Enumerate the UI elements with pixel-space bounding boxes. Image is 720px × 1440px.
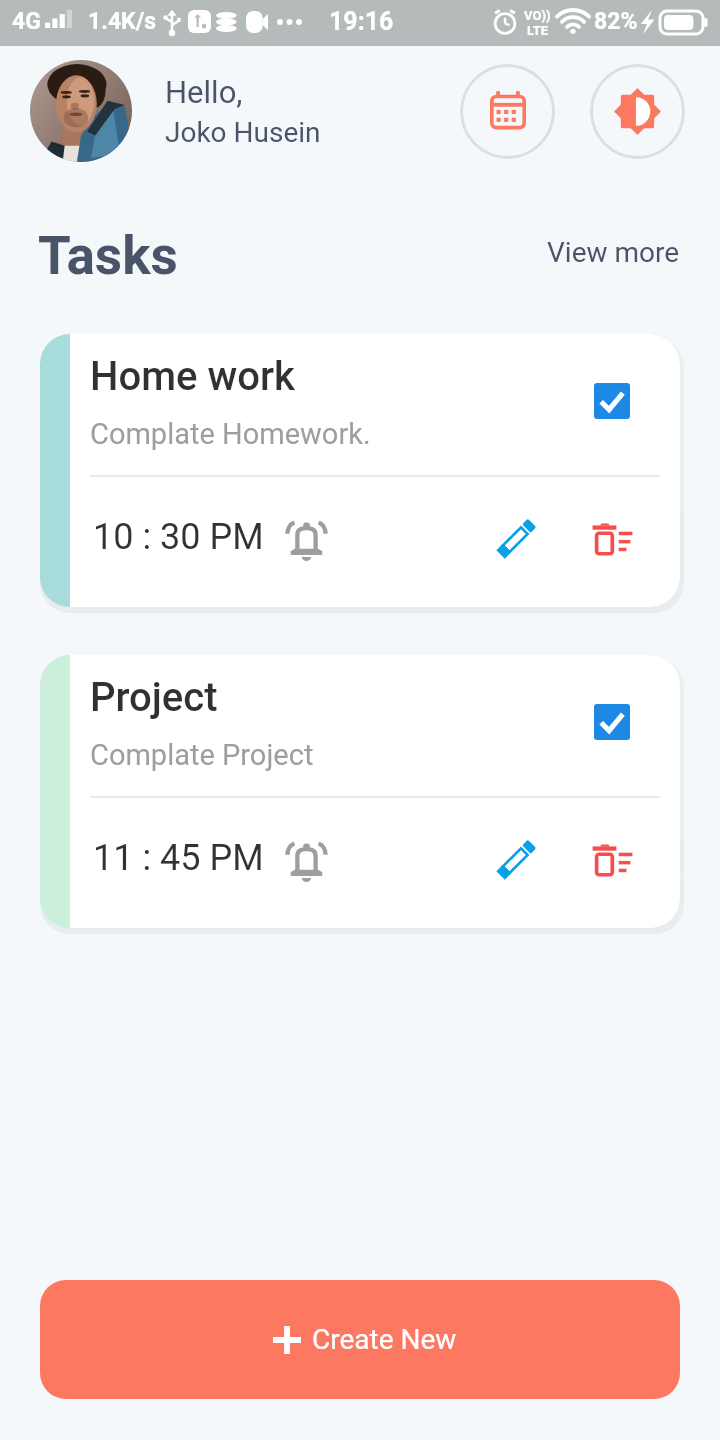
staticText: LTE xyxy=(527,23,549,38)
staticText: 82% xyxy=(594,8,638,35)
staticText: VO)) xyxy=(524,8,551,23)
staticText: 1.4K/s xyxy=(88,8,157,35)
staticText: 10 : 30 PM xyxy=(93,516,264,558)
button[interactable]: Delete task xyxy=(586,834,638,886)
button[interactable]: Edit task xyxy=(490,833,542,885)
button[interactable]: Profile photo xyxy=(30,60,132,162)
button[interactable]: Mark task complete xyxy=(594,704,630,740)
staticText: Project xyxy=(90,674,218,721)
button[interactable]: Edit task xyxy=(490,512,542,564)
staticText: 19:16 xyxy=(329,7,394,36)
button[interactable]: Brightness xyxy=(590,64,685,159)
staticText: 4G xyxy=(12,8,41,35)
staticText: Home work xyxy=(90,353,295,400)
staticText: View more xyxy=(547,236,680,269)
button[interactable]: Mark task complete xyxy=(594,383,630,419)
staticText: 11 : 45 PM xyxy=(93,837,264,879)
button[interactable]: Home work xyxy=(40,334,680,607)
staticText: Complate Homework. xyxy=(90,417,371,451)
button[interactable]: View more xyxy=(547,236,680,269)
staticText: Hello, xyxy=(165,74,243,110)
button[interactable]: Calendar xyxy=(460,64,555,159)
button[interactable]: Alarm reminder xyxy=(280,834,332,886)
button[interactable]: Alarm reminder xyxy=(280,513,332,565)
staticText: Create New xyxy=(312,1323,457,1356)
button[interactable]: Create New xyxy=(40,1280,680,1399)
button[interactable]: Delete task xyxy=(586,513,638,565)
staticText: Complate Project xyxy=(90,738,314,772)
staticText: Tasks xyxy=(38,225,178,287)
button[interactable]: Project xyxy=(40,655,680,928)
staticText: Joko Husein xyxy=(165,116,321,149)
